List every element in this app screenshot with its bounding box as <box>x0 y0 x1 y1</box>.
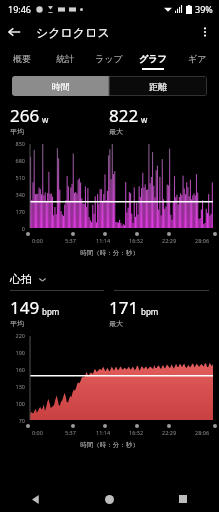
staticText: 822 <box>109 104 139 127</box>
button[interactable]: ラップ <box>87 46 131 70</box>
staticText: 130 <box>0 383 25 390</box>
staticText: 16:52 <box>129 429 144 436</box>
staticText: 最大 <box>109 127 123 136</box>
staticText: 850 <box>0 140 25 147</box>
staticText: 平均 <box>10 319 24 328</box>
staticText: 距離 <box>149 81 167 92</box>
staticText: 340 <box>0 191 25 198</box>
button[interactable]: Back <box>0 18 28 46</box>
button[interactable]: More options <box>191 18 219 46</box>
staticText: 149 <box>10 296 40 319</box>
staticText: 28:06 <box>195 237 210 244</box>
staticText: bpm <box>141 306 159 317</box>
staticText: 19:46 <box>8 3 32 15</box>
staticText: 0:00 <box>32 429 43 436</box>
staticText: 平均 <box>10 127 24 136</box>
staticText: 5:37 <box>65 237 76 244</box>
staticText: 0:00 <box>32 237 43 244</box>
button[interactable]: 統計 <box>43 46 87 70</box>
staticText: 0 <box>0 225 25 232</box>
staticText: w <box>42 114 49 125</box>
button[interactable]: 概要 <box>0 46 43 70</box>
button[interactable]: 距離 <box>109 76 207 96</box>
staticText: 22:29 <box>162 237 177 244</box>
staticText: 28:06 <box>195 429 210 436</box>
button[interactable]: 心拍 <box>10 270 219 288</box>
staticText: 時間（時：分：秒） <box>80 249 139 257</box>
staticText: 171 <box>109 296 139 319</box>
staticText: ギア <box>188 53 207 64</box>
staticText: 70 <box>0 417 25 424</box>
staticText: 11:14 <box>96 429 111 436</box>
staticText: 22:29 <box>162 429 177 436</box>
staticText: 39% <box>195 3 213 15</box>
button[interactable]: Back <box>0 486 73 512</box>
staticText: 266 <box>10 104 40 127</box>
staticText: 170 <box>0 208 25 215</box>
button[interactable]: グラフ <box>131 46 175 70</box>
staticText: 220 <box>0 332 25 339</box>
staticText: 190 <box>0 349 25 356</box>
staticText: 5:37 <box>65 429 76 436</box>
staticText: 統計 <box>56 53 74 64</box>
staticText: 680 <box>0 157 25 164</box>
staticText: w <box>141 114 148 125</box>
staticText: 510 <box>0 174 25 181</box>
staticText: シクロクロス <box>36 25 110 40</box>
button[interactable]: ギア <box>175 46 219 70</box>
staticText: ラップ <box>95 53 123 64</box>
staticText: 時間（時：分：秒） <box>80 441 139 449</box>
staticText: 心拍 <box>10 272 32 286</box>
staticText: 最大 <box>109 319 123 328</box>
staticText: 160 <box>0 366 25 373</box>
staticText: 100 <box>0 400 25 407</box>
staticText: bpm <box>42 306 60 317</box>
staticText: 16:52 <box>129 237 144 244</box>
staticText: 11:14 <box>96 237 111 244</box>
staticText: グラフ <box>139 53 167 64</box>
other: Expand <box>38 275 47 284</box>
staticText: 概要 <box>13 53 31 64</box>
button[interactable]: Home <box>73 486 146 512</box>
staticText: 時間 <box>52 81 70 92</box>
button[interactable]: 時間 <box>12 76 109 96</box>
button[interactable]: Recents <box>146 486 219 512</box>
